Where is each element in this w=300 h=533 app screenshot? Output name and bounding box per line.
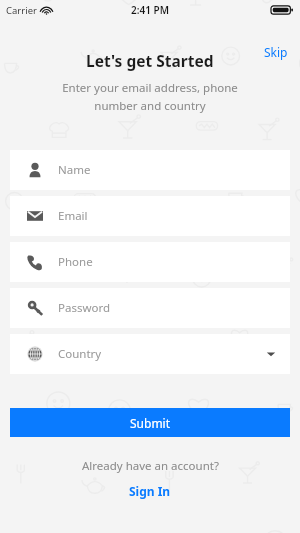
staticText: Submit (130, 415, 171, 431)
staticText: Let's get Started (86, 50, 214, 71)
button[interactable]: Email (10, 196, 290, 236)
staticText: Phone (58, 254, 93, 270)
button[interactable]: Sign In (123, 481, 177, 501)
button[interactable]: Skip (260, 42, 292, 62)
staticText: Country (58, 346, 102, 362)
staticText: Carrier (6, 4, 37, 17)
button[interactable]: Submit (10, 408, 290, 437)
staticText: Enter your email address, phone number a… (62, 80, 238, 113)
staticText: 2:41 PM (131, 3, 169, 17)
button[interactable]: Phone (10, 242, 290, 282)
staticText: Password (58, 300, 111, 316)
button[interactable]: Name (10, 150, 290, 190)
button[interactable]: Country (10, 334, 290, 374)
staticText: Already have an account? (82, 458, 219, 474)
button[interactable]: Password (10, 288, 290, 328)
staticText: Name (58, 162, 91, 178)
staticText: Email (58, 208, 88, 224)
